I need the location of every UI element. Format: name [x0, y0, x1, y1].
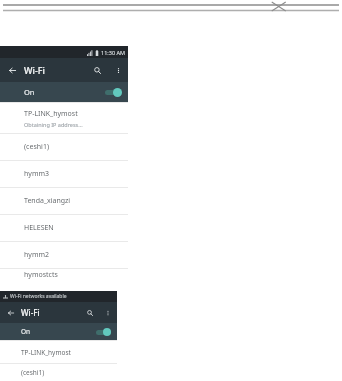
- button[interactable]: Wi-Fi toggle: [105, 87, 122, 98]
- staticText: hymostcts: [24, 270, 58, 280]
- button[interactable]: More options: [99, 304, 117, 322]
- button[interactable]: TP-LINK_hymost: [0, 102, 128, 133]
- staticText: Tenda_xiangzi: [24, 196, 71, 206]
- button[interactable]: TP-LINK_hymost: [0, 340, 117, 363]
- staticText: hymm3: [24, 169, 49, 179]
- button[interactable]: Search: [86, 59, 108, 81]
- staticText: On: [21, 327, 31, 336]
- staticText: TP-LINK_hymost: [24, 109, 78, 119]
- staticText: Wi-Fi networks available: [10, 293, 67, 300]
- button[interactable]: Back: [0, 58, 24, 82]
- button[interactable]: HELESEN: [0, 214, 128, 241]
- button[interactable]: More options: [108, 60, 128, 80]
- button[interactable]: Wi-Fi toggle: [96, 327, 111, 337]
- staticText: HELESEN: [24, 223, 54, 233]
- button[interactable]: (ceshi1): [0, 133, 128, 160]
- button[interactable]: On: [0, 323, 117, 340]
- staticText: Obtaining IP address...: [24, 121, 83, 128]
- button[interactable]: (ceshi1): [0, 363, 117, 381]
- button[interactable]: hymostcts: [0, 268, 128, 280]
- button[interactable]: Search: [80, 303, 99, 322]
- staticText: 11:30 AM: [101, 49, 125, 56]
- staticText: Wi-Fi: [24, 64, 45, 76]
- staticText: (ceshi1): [21, 368, 45, 377]
- button[interactable]: Tenda_xiangzi: [0, 187, 128, 214]
- staticText: (ceshi1): [24, 142, 49, 152]
- button[interactable]: On: [0, 82, 128, 102]
- staticText: TP-LINK_hymost: [21, 348, 71, 357]
- button[interactable]: hymm2: [0, 241, 128, 268]
- staticText: On: [24, 87, 35, 97]
- staticText: hymm2: [24, 250, 49, 260]
- button[interactable]: hymm3: [0, 160, 128, 187]
- staticText: Wi-Fi: [21, 307, 40, 318]
- button[interactable]: Back: [0, 302, 21, 323]
